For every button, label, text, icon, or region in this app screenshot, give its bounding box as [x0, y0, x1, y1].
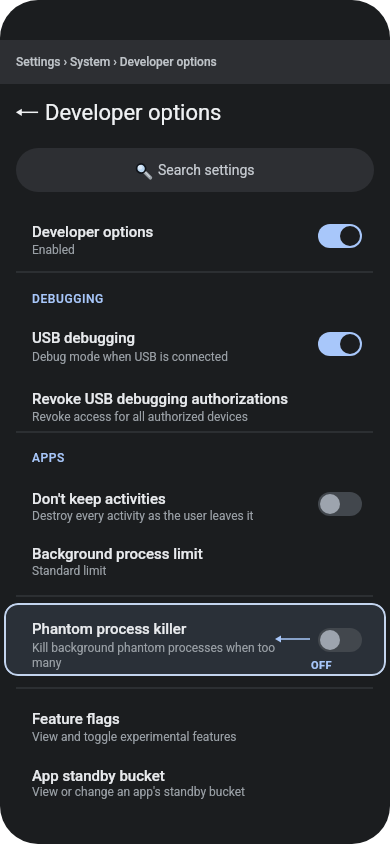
button[interactable] — [0, 702, 390, 752]
button[interactable]: Phantom process killer toggle — [318, 628, 362, 652]
staticText: View and toggle experimental features — [32, 730, 237, 744]
staticText: Search settings — [158, 162, 255, 178]
staticText: Enabled — [32, 243, 75, 257]
button[interactable]: USB debugging toggle — [318, 332, 362, 356]
staticText: Debug mode when USB is connected — [32, 350, 228, 364]
button[interactable]: Search settings — [16, 148, 374, 192]
staticText: Phantom process killer — [32, 620, 187, 638]
staticText: Developer options — [32, 223, 154, 241]
button[interactable] — [0, 482, 390, 532]
staticText: OFF — [311, 659, 332, 672]
button[interactable] — [0, 212, 390, 268]
staticText: App standby bucket — [32, 767, 165, 785]
staticText: Revoke USB debugging authorizations — [32, 390, 288, 408]
staticText: Destroy every activity as the user leave… — [32, 509, 254, 523]
staticText: many — [32, 656, 62, 670]
button[interactable] — [0, 538, 390, 588]
staticText: Revoke access for all authorized devices — [32, 410, 248, 424]
staticText: Standard limit — [32, 564, 107, 578]
button[interactable] — [0, 380, 390, 432]
staticText: USB debugging — [32, 329, 136, 347]
staticText: Background process limit — [32, 545, 203, 563]
button[interactable]: Developer options toggle — [318, 224, 362, 248]
staticText: Don't keep activities — [32, 490, 166, 508]
staticText: DEBUGGING — [32, 292, 104, 306]
staticText: Kill background phantom processes when t… — [32, 641, 276, 655]
staticText: Developer options — [45, 100, 222, 126]
staticText: APPS — [32, 451, 65, 465]
staticText: Feature flags — [32, 710, 120, 728]
button[interactable]: Back — [10, 98, 44, 126]
button[interactable] — [4, 603, 386, 676]
staticText: View or change an app's standby bucket — [32, 785, 245, 799]
staticText: Settings › System › Developer options — [16, 55, 217, 69]
button[interactable] — [0, 758, 390, 808]
button[interactable]: Don't keep activities toggle — [318, 492, 362, 516]
button[interactable] — [0, 320, 390, 372]
